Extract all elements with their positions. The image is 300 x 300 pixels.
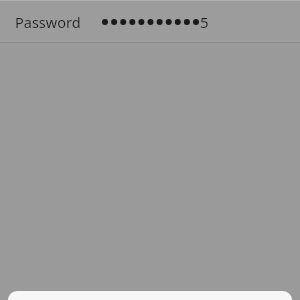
staticText: 5 <box>200 12 209 32</box>
button[interactable]: Password <box>0 0 300 43</box>
button[interactable]: Sheet <box>8 291 292 300</box>
staticText: Password <box>15 12 81 32</box>
other: Hidden password characters <box>102 15 199 29</box>
